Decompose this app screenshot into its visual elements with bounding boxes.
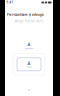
staticText: Adaugă: [26, 66, 32, 68]
staticText: Adaugă act: [25, 48, 33, 49]
staticText: 9:41: [6, 1, 13, 4]
staticText: Alege fișierul dorit: [15, 19, 43, 23]
staticText: Previzualizare și adaugă: [7, 13, 44, 16]
button[interactable]: Adaugă act: [25, 42, 33, 49]
button[interactable]: Adaugă: [17, 58, 41, 71]
